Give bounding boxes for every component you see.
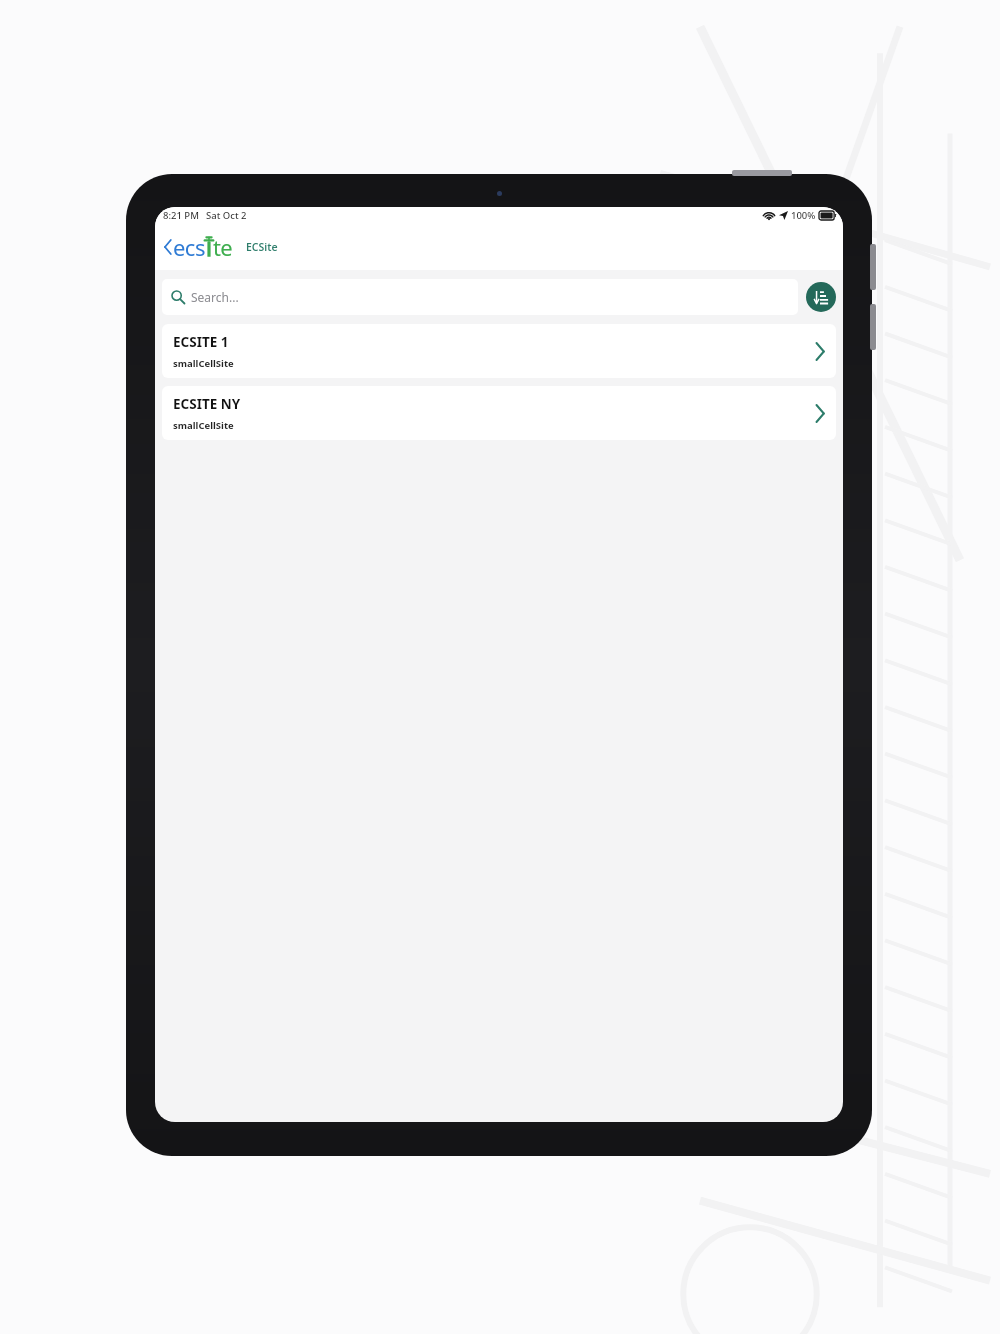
staticText: Sat Oct 2	[206, 209, 247, 222]
button[interactable]: Back to ecsite	[162, 228, 235, 266]
staticText: ECSITE 1	[173, 333, 229, 351]
staticText: 8:21 PM	[163, 209, 199, 222]
staticText: ECSite	[246, 240, 278, 254]
staticText: smallCellSite	[173, 419, 234, 432]
button[interactable]: Search...	[162, 279, 798, 315]
staticText: Search...	[191, 289, 239, 305]
staticText: 100%	[791, 209, 816, 222]
staticText: s	[195, 232, 205, 262]
staticText: te	[213, 232, 233, 262]
staticText: ECSITE NY	[173, 395, 241, 413]
staticText: smallCellSite	[173, 357, 234, 370]
button[interactable]: Sort	[806, 282, 836, 312]
staticText: ec	[173, 232, 195, 262]
button[interactable]: ECSITE 1	[162, 324, 836, 378]
button[interactable]: ECSITE NY	[162, 386, 836, 440]
